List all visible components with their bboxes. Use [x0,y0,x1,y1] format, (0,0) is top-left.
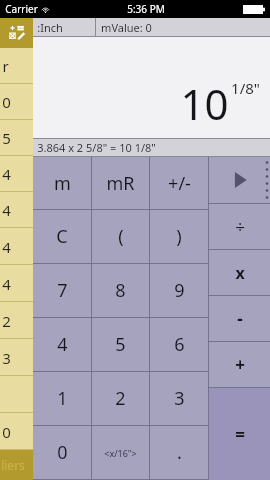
staticText: 4 [2,200,11,220]
staticText: 5 [115,332,126,357]
staticText: +/- [168,171,191,196]
button[interactable]: C [33,210,91,263]
button[interactable]: 3 [150,372,208,425]
button[interactable]: <x/16"> [92,426,149,479]
staticText: ÷ [235,215,245,238]
button[interactable]: . [150,426,208,479]
button[interactable]: 3 [0,339,33,376]
staticText: 5:36 PM [127,2,165,16]
button[interactable]: ) [150,210,208,263]
button[interactable] [0,376,33,413]
staticText: 1/8" [231,78,260,98]
button[interactable]: 7 [33,264,91,317]
button[interactable]: 0 [0,413,33,450]
staticText: :Inch [37,20,63,35]
button[interactable]: 4 [0,192,33,228]
staticText: mR [106,171,135,196]
button[interactable]: 4 [0,156,33,192]
staticText: 4 [2,164,11,184]
button[interactable]: 0 [0,84,33,120]
staticText: 8 [115,278,126,303]
staticText: 2 [2,311,11,331]
button[interactable]: 1 [33,372,91,425]
staticText: liers [1,457,25,473]
staticText: + [235,353,245,376]
button[interactable]: 4 [0,228,33,265]
staticText: r [2,56,9,76]
button[interactable]: = [209,388,270,480]
staticText: 0 [57,440,68,465]
staticText: ) [176,224,182,249]
button[interactable]: 9 [150,264,208,317]
staticText: 3 [174,386,185,411]
staticText: 4 [2,274,11,294]
staticText: Carrier [5,2,38,16]
button[interactable]: m [33,157,91,209]
button[interactable]: +/- [150,157,208,209]
staticText: 4 [2,237,11,257]
staticText: 3.864 x 2 5/8" = 10 1/8" [37,140,156,155]
button[interactable]: 8 [92,264,149,317]
staticText: x [235,262,245,284]
staticText: . [177,440,182,465]
staticText: 0 [2,422,11,442]
button[interactable]: 3.864 x 2 5/8" = 10 1/8" [33,139,270,156]
button[interactable]: 4 [33,318,91,371]
button[interactable]: 6 [150,318,208,371]
button[interactable]: r [0,48,33,84]
staticText: 4 [57,332,68,357]
staticText: 7 [57,278,68,303]
button[interactable]: liers [0,450,33,480]
button[interactable]: 4 [0,265,33,302]
button[interactable]: 2 [92,372,149,425]
button[interactable]: :Inch [33,18,95,36]
staticText: 9 [174,278,185,303]
button[interactable]: mR [92,157,149,209]
staticText: 0 [2,92,11,112]
button[interactable]: + [209,342,270,387]
staticText: mValue: 0 [101,20,152,35]
staticText: 5 [2,128,11,148]
staticText: ( [118,224,124,249]
button[interactable]: x [209,250,270,295]
button[interactable]: Run [209,157,270,203]
button[interactable]: 2 [0,302,33,339]
button[interactable]: ( [92,210,149,263]
staticText: - [237,307,243,330]
button[interactable]: - [209,296,270,341]
button[interactable]: 5 [92,318,149,371]
button[interactable]: 5 [0,120,33,156]
button[interactable]: ÷ [209,204,270,249]
button[interactable]: Calculator menu [0,18,33,48]
staticText: 2 [115,386,126,411]
staticText: 10 [180,75,229,132]
staticText: 3 [2,348,11,368]
staticText: = [235,423,245,446]
button[interactable]: mValue: 0 [96,18,270,36]
staticText: m [54,171,71,196]
staticText: 1 [57,386,68,411]
staticText: C [56,224,68,249]
staticText: <x/16"> [104,447,137,459]
staticText: 6 [174,332,185,357]
button[interactable]: 0 [33,426,91,479]
